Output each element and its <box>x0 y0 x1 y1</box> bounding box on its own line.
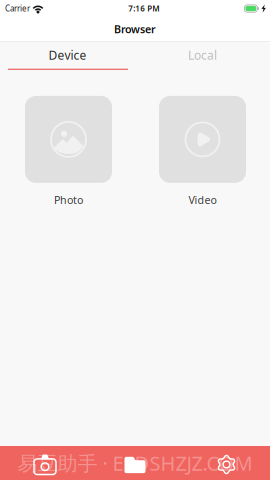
button[interactable]: Local <box>135 42 270 69</box>
staticText: Carrier <box>5 3 30 14</box>
button[interactable]: Device <box>0 42 135 69</box>
button[interactable]: Camera <box>0 446 90 480</box>
staticText: Browser <box>114 22 156 36</box>
staticText: Device <box>48 47 86 63</box>
staticText: 7:16 PM <box>128 3 159 14</box>
button[interactable]: Files <box>90 446 180 480</box>
staticText: Local <box>188 47 217 63</box>
button[interactable]: Settings <box>180 446 270 480</box>
staticText: Photo <box>54 193 83 207</box>
button[interactable]: Video <box>159 96 246 207</box>
staticText: Video <box>188 193 216 207</box>
button[interactable]: Photo <box>25 96 112 207</box>
staticText: 易豆助手 · EEDSHZJZ.COM <box>17 450 252 476</box>
